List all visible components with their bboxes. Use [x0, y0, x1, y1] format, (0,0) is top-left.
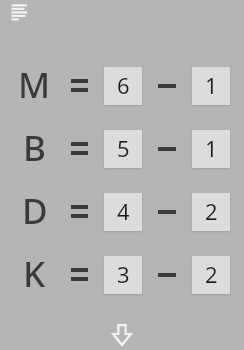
button[interactable]: 1 — [192, 67, 230, 105]
staticText: K — [23, 250, 46, 295]
button[interactable]: K — [14, 250, 55, 295]
button[interactable]: 1 — [192, 130, 230, 168]
staticText: B — [23, 124, 46, 169]
button[interactable]: 3 — [104, 256, 142, 294]
button[interactable]: 6 — [104, 67, 142, 105]
staticText: 4 — [117, 196, 130, 226]
button[interactable]: Scroll down — [104, 314, 140, 350]
button[interactable]: 4 — [104, 193, 142, 231]
other: equals — [71, 142, 88, 155]
button[interactable]: 2 — [192, 256, 230, 294]
staticText: 6 — [117, 70, 130, 100]
other: equals — [71, 268, 88, 281]
staticText: 5 — [117, 133, 130, 163]
button[interactable]: B — [14, 124, 55, 169]
button[interactable]: 2 — [192, 193, 230, 231]
button[interactable]: 5 — [104, 130, 142, 168]
staticText: 1 — [205, 133, 218, 163]
other: equals — [71, 79, 88, 92]
staticText: 2 — [205, 259, 218, 289]
staticText: M — [18, 61, 51, 106]
staticText: 2 — [205, 196, 218, 226]
staticText: D — [22, 187, 48, 232]
staticText: 3 — [117, 259, 130, 289]
button[interactable]: D — [14, 187, 55, 232]
other: equals — [71, 205, 88, 218]
button[interactable]: M — [14, 61, 55, 106]
button[interactable]: Menu — [0, 0, 40, 28]
staticText: 1 — [205, 70, 218, 100]
